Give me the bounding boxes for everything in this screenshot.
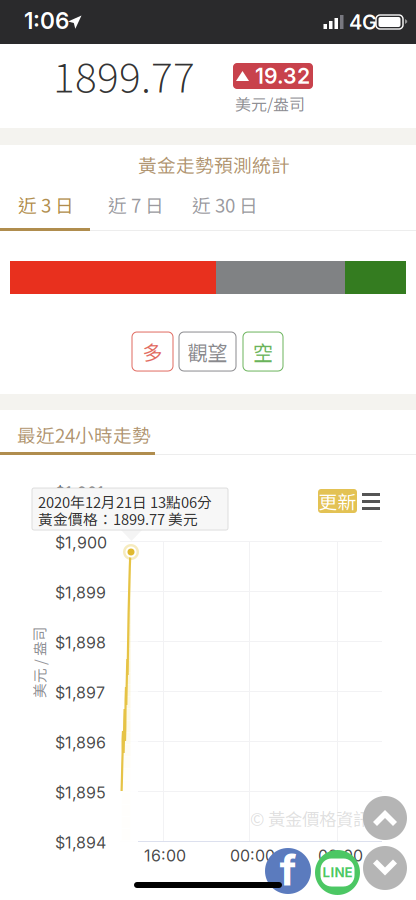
button[interactable]: Scroll to top <box>363 796 407 840</box>
button[interactable]: 近 7 日 <box>90 182 174 219</box>
button[interactable]: 多 <box>132 332 173 371</box>
staticText: LINE <box>322 864 352 880</box>
staticText: 空 <box>253 337 273 366</box>
button[interactable]: Share on LINE <box>315 850 360 895</box>
staticText: 近 3 日 <box>18 191 74 218</box>
staticText: $1,897 <box>55 683 105 702</box>
staticText: $1,896 <box>55 733 106 752</box>
staticText: $1,901 <box>55 483 104 502</box>
staticText: 4G <box>349 10 377 34</box>
staticText: $1,898 <box>55 633 106 652</box>
staticText: 近 30 日 <box>192 191 258 218</box>
staticText: 08:00 <box>318 846 363 865</box>
staticText: 近 7 日 <box>108 191 164 218</box>
staticText: © 黃金價格資訊站 <box>250 806 387 831</box>
staticText: 16:00 <box>144 846 186 865</box>
staticText: 19.32 <box>255 63 310 89</box>
button[interactable]: 更新 <box>318 489 357 513</box>
button[interactable]: 觀望 <box>179 332 236 371</box>
staticText: 00:00 <box>230 846 275 865</box>
staticText: 多 <box>142 337 162 366</box>
staticText: 更新 <box>318 487 356 514</box>
staticText: 最近24小時走勢 <box>17 421 151 448</box>
button[interactable]: Share on Facebook <box>265 848 311 894</box>
staticText: 美元 / 盎司 <box>3 651 75 673</box>
staticText: 1899.77 <box>53 46 195 111</box>
staticText: 黃金價格：1899.77 美元 <box>38 508 198 529</box>
staticText: $1,895 <box>55 783 106 802</box>
button[interactable]: 最近24小時走勢 <box>0 410 155 455</box>
staticText: f <box>279 844 296 896</box>
button[interactable]: Scroll to bottom <box>363 846 407 890</box>
staticText: 觀望 <box>187 337 227 366</box>
staticText: $1,900 <box>55 533 107 552</box>
staticText: 1:06 <box>24 7 69 34</box>
button[interactable]: 空 <box>243 332 283 371</box>
button[interactable]: Menu <box>362 493 380 510</box>
staticText: $1,899 <box>55 583 106 602</box>
button[interactable]: 近 3 日 <box>0 182 90 219</box>
staticText: 黃金走勢預測統計 <box>138 151 290 178</box>
button[interactable]: 近 30 日 <box>174 182 270 219</box>
staticText: $1,894 <box>55 833 106 852</box>
staticText: 美元/盎司 <box>235 92 305 115</box>
staticText: 2020年12月21日 13點06分 <box>38 491 212 512</box>
